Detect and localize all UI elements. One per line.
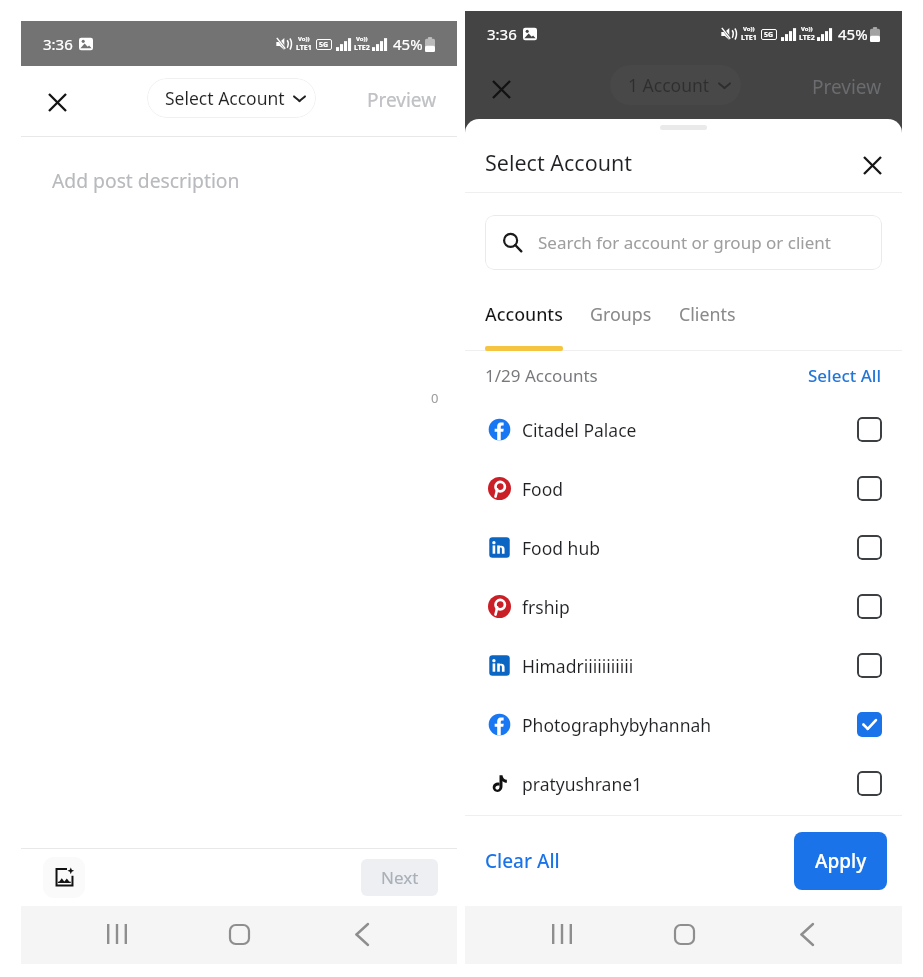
staticText: 5G: [319, 40, 329, 50]
button[interactable]: Home: [656, 905, 712, 963]
button[interactable]: Food hub: [465, 518, 902, 577]
staticText: Himadriiiiiiiiiii: [522, 654, 634, 678]
button[interactable]: Groups: [590, 302, 652, 351]
staticText: Vo)): [743, 25, 755, 33]
button[interactable]: Home: [211, 905, 267, 963]
staticText: Clear All: [485, 848, 560, 874]
staticText: Groups: [590, 302, 652, 326]
button[interactable]: Citadel Palace: [465, 400, 902, 459]
staticText: LTE1: [296, 43, 312, 53]
staticText: 45%: [838, 24, 868, 44]
staticText: Next: [381, 866, 419, 889]
button[interactable]: Himadriiiiiiiiiii: [465, 636, 902, 695]
staticText: 5G: [764, 30, 774, 40]
button[interactable]: Preview: [361, 81, 443, 119]
staticText: Food: [522, 477, 564, 501]
staticText: LTE1: [741, 33, 757, 43]
staticText: Preview: [812, 74, 882, 100]
staticText: Select Account: [485, 148, 632, 177]
staticText: Vo)): [298, 35, 310, 43]
staticText: Select Account: [165, 86, 285, 110]
button[interactable]: Add image: [43, 857, 85, 898]
staticText: Search for account or group or client: [538, 231, 831, 254]
button[interactable]: Clear All: [485, 848, 560, 874]
staticText: Accounts: [485, 302, 563, 326]
button[interactable]: Food: [465, 459, 902, 518]
staticText: Food hub: [522, 536, 600, 560]
button[interactable]: Clients: [679, 302, 736, 351]
button[interactable]: Apply: [794, 832, 887, 890]
button[interactable]: Close: [479, 67, 523, 111]
staticText: Select All: [808, 364, 882, 387]
staticText: 3:36: [487, 24, 517, 44]
button[interactable]: Select All: [808, 364, 882, 387]
staticText: 3:36: [43, 34, 73, 54]
staticText: LTE2: [799, 33, 815, 43]
button[interactable]: Select Account: [147, 78, 316, 118]
staticText: Apply: [815, 848, 867, 874]
staticText: Vo)): [356, 35, 368, 43]
staticText: 1/29 Accounts: [485, 364, 598, 387]
staticText: LTE2: [354, 43, 370, 53]
button[interactable]: Close: [854, 147, 890, 183]
staticText: Photographybyhannah: [522, 713, 712, 737]
button[interactable]: frship: [465, 577, 902, 636]
staticText: 45%: [393, 34, 423, 54]
button[interactable]: Search for account or group or client: [485, 215, 882, 270]
button[interactable]: Recents: [534, 905, 590, 963]
button[interactable]: Next: [361, 859, 438, 896]
staticText: Citadel Palace: [522, 418, 637, 442]
button[interactable]: pratyushrane1: [465, 754, 902, 813]
staticText: Preview: [367, 87, 437, 113]
button[interactable]: Photographybyhannah: [465, 695, 902, 754]
staticText: 0: [431, 389, 439, 407]
button[interactable]: Accounts: [485, 302, 563, 351]
button[interactable]: Preview: [806, 68, 888, 106]
staticText: Vo)): [801, 25, 813, 33]
button[interactable]: 1 Account: [610, 65, 741, 105]
button[interactable]: Close: [35, 80, 79, 124]
button[interactable]: Back: [333, 905, 389, 963]
staticText: Add post description: [52, 167, 240, 193]
button[interactable]: Recents: [89, 905, 145, 963]
staticText: pratyushrane1: [522, 772, 643, 796]
staticText: frship: [522, 595, 570, 619]
staticText: 1 Account: [628, 73, 710, 97]
staticText: Clients: [679, 302, 736, 326]
button[interactable]: Back: [778, 905, 834, 963]
